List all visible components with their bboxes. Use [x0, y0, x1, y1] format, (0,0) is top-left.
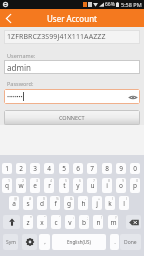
- staticText: CONNECT: [59, 114, 85, 121]
- staticText: %: [56, 196, 59, 201]
- staticText: 0: [136, 178, 139, 183]
- button[interactable]: a: [9, 196, 19, 210]
- staticText: 6: [76, 164, 80, 173]
- button[interactable]: Backspace: [126, 215, 141, 229]
- staticText: 5: [65, 178, 68, 183]
- button[interactable]: 4: [44, 163, 54, 174]
- staticText: j: [96, 199, 98, 208]
- button[interactable]: 9: [116, 163, 126, 174]
- staticText: 3: [33, 164, 37, 173]
- button[interactable]: 2: [16, 163, 26, 174]
- button[interactable]: z: [23, 215, 33, 229]
- staticText: +: [98, 196, 101, 201]
- button[interactable]: f: [50, 196, 60, 210]
- staticText: 4: [47, 164, 51, 173]
- staticText: v: [68, 218, 72, 227]
- staticText: 1: [8, 178, 11, 183]
- staticText: Password:: [7, 80, 34, 87]
- staticText: r: [48, 181, 51, 190]
- button[interactable]: j: [92, 196, 102, 210]
- button[interactable]: h: [78, 196, 88, 210]
- button[interactable]: Shift: [3, 215, 20, 229]
- staticText: @: [14, 196, 18, 201]
- button[interactable]: o: [116, 178, 126, 193]
- staticText: h: [81, 199, 86, 208]
- button[interactable]: Show password: [128, 92, 138, 102]
- staticText: b: [82, 218, 86, 227]
- button[interactable]: 3: [30, 163, 40, 174]
- button[interactable]: s: [23, 196, 33, 210]
- staticText: ': [59, 215, 60, 220]
- staticText: l: [123, 199, 125, 208]
- button[interactable]: w: [16, 178, 26, 193]
- button[interactable]: ••••••••: [4, 89, 140, 104]
- button[interactable]: x: [37, 215, 47, 229]
- staticText: p: [133, 181, 137, 190]
- button[interactable]: .: [110, 234, 119, 250]
- staticText: .: [114, 238, 116, 246]
- staticText: t: [63, 181, 66, 190]
- staticText: (: [112, 196, 114, 201]
- button[interactable]: m: [108, 215, 118, 229]
- button[interactable]: Sym: [3, 234, 18, 250]
- staticText: 5: [62, 164, 66, 173]
- button[interactable]: d: [37, 196, 47, 210]
- button[interactable]: q: [2, 178, 12, 193]
- button[interactable]: y: [73, 178, 83, 193]
- staticText: :: [73, 215, 74, 220]
- button[interactable]: 8: [102, 163, 112, 174]
- button[interactable]: p: [130, 178, 140, 193]
- other: Shift: [9, 218, 15, 226]
- button[interactable]: n: [93, 215, 103, 229]
- button[interactable]: 7: [87, 163, 97, 174]
- staticText: q: [5, 181, 9, 190]
- staticText: 9: [119, 164, 123, 173]
- button[interactable]: u: [87, 178, 97, 193]
- staticText: 0: [133, 164, 137, 173]
- button[interactable]: 5: [59, 163, 69, 174]
- button[interactable]: r: [44, 178, 54, 193]
- staticText: 1: [5, 164, 9, 173]
- staticText: *: [30, 215, 32, 220]
- button[interactable]: Settings: [22, 234, 37, 250]
- staticText: 66%: [105, 1, 115, 8]
- button[interactable]: admin: [4, 60, 140, 74]
- button[interactable]: 1: [2, 163, 12, 174]
- other: Backspace: [129, 219, 139, 226]
- button[interactable]: e: [30, 178, 40, 193]
- button[interactable]: l: [119, 196, 129, 210]
- staticText: $: [43, 196, 46, 201]
- button[interactable]: t: [59, 178, 69, 193]
- staticText: m: [110, 218, 117, 227]
- button[interactable]: English(US): [52, 234, 106, 250]
- staticText: e: [33, 181, 37, 190]
- button[interactable]: Back: [0, 9, 17, 27]
- button[interactable]: v: [65, 215, 75, 229]
- button[interactable]: g: [64, 196, 74, 210]
- staticText: &: [70, 196, 73, 201]
- staticText: 7: [93, 178, 96, 183]
- button[interactable]: c: [51, 215, 61, 229]
- button[interactable]: CONNECT: [4, 110, 140, 125]
- staticText: ••••••••: [7, 93, 23, 100]
- staticText: #: [29, 196, 32, 201]
- staticText: x: [40, 218, 44, 227]
- button[interactable]: i: [102, 178, 112, 193]
- staticText: 1ZFRBRCZ3S99J41X111AAZZZ: [7, 32, 106, 42]
- button[interactable]: b: [79, 215, 89, 229]
- button[interactable]: Done: [120, 234, 141, 250]
- staticText: admin: [7, 62, 31, 73]
- staticText: User Account: [47, 13, 97, 24]
- button[interactable]: 0: [130, 163, 140, 174]
- staticText: 6: [79, 178, 82, 183]
- staticText: n: [96, 218, 101, 227]
- staticText: Username:: [7, 52, 36, 59]
- button[interactable]: k: [105, 196, 115, 210]
- staticText: 8: [108, 178, 111, 183]
- staticText: g: [67, 199, 71, 208]
- button[interactable]: 6: [73, 163, 83, 174]
- staticText: -: [85, 196, 87, 201]
- staticText: o: [119, 181, 123, 190]
- button[interactable]: ,: [39, 234, 50, 250]
- staticText: 7: [90, 164, 94, 173]
